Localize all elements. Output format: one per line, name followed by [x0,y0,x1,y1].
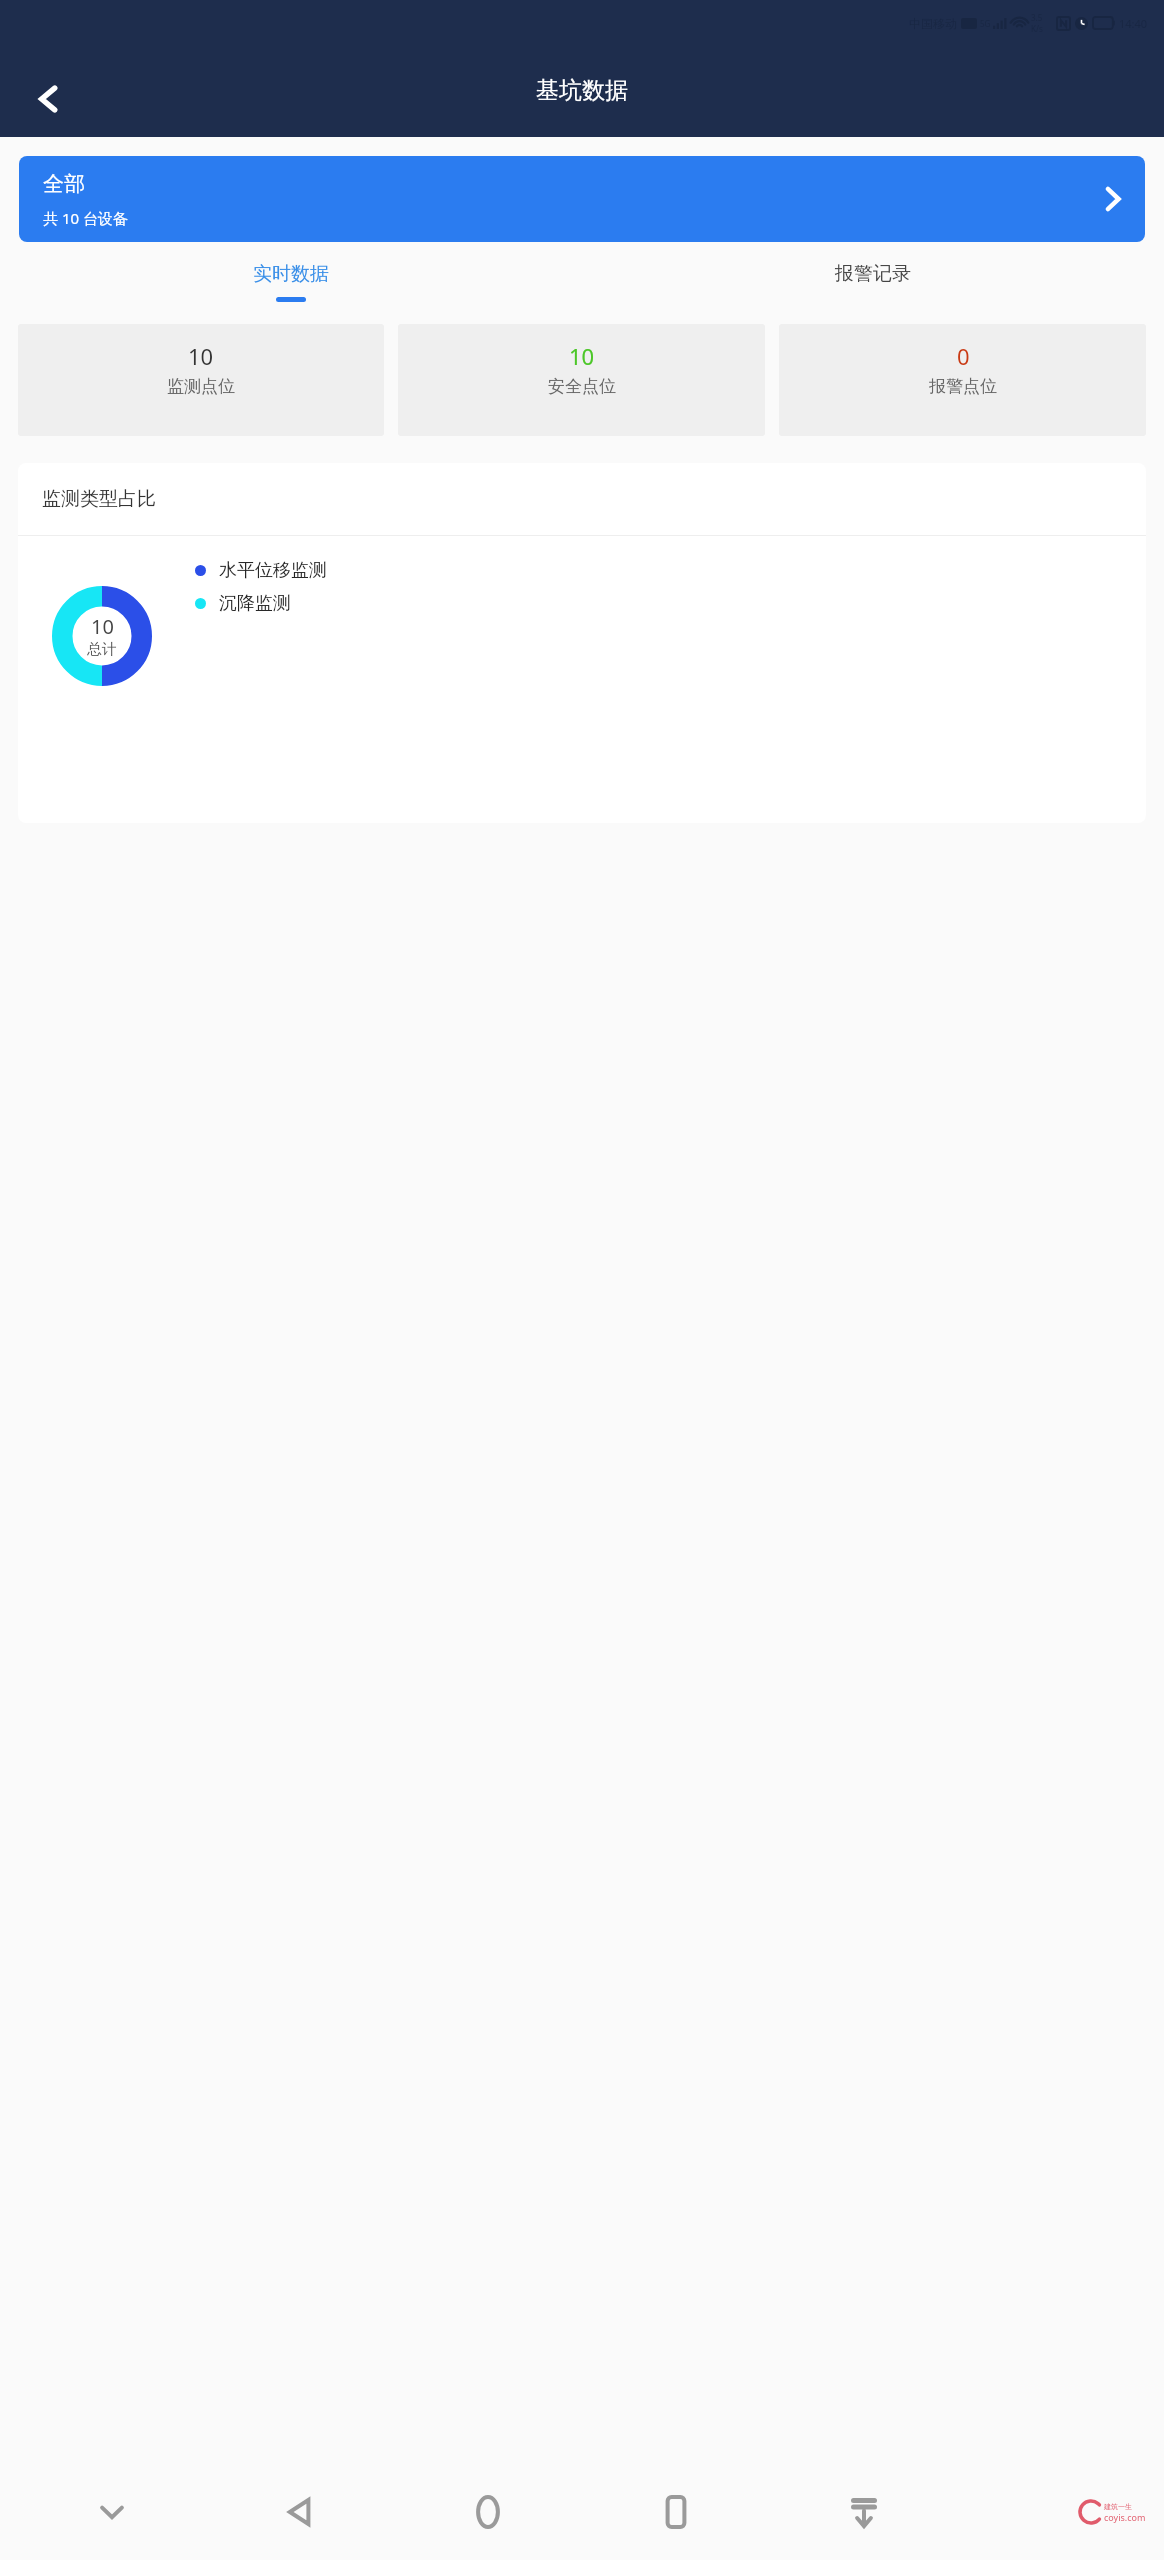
staticText: 报警点位 [929,376,997,397]
staticText: 水平位移监测 [219,559,327,582]
staticText: 10 [569,341,595,371]
button[interactable]: 10 [398,324,765,436]
staticText: 共 10 台设备 [43,208,128,228]
button[interactable]: 实时数据 [0,258,582,302]
staticText: 监测类型占比 [42,487,156,511]
staticText: 10 [188,341,214,371]
button[interactable]: Back [18,68,80,130]
staticText: 总计 [87,640,117,659]
staticText: 安全点位 [548,376,616,397]
staticText: 0 [957,341,970,371]
staticText: 10 [91,613,114,640]
staticText: 全部 [43,171,85,197]
button[interactable]: 0 [779,324,1146,436]
staticText: coyis.com [1104,2511,1146,2523]
staticText: 沉降监测 [219,592,291,615]
staticText: 基坑数据 [536,76,628,105]
button[interactable]: 10 [18,324,384,436]
button[interactable]: Recents [582,2464,770,2560]
button[interactable]: Back [206,2464,394,2560]
button[interactable]: 报警记录 [582,258,1164,297]
button[interactable]: Home [394,2464,582,2560]
button[interactable]: Download [770,2464,958,2560]
staticText: 报警记录 [835,262,911,286]
staticText: 监测点位 [167,376,235,397]
button[interactable]: 全部 [19,156,1145,242]
button[interactable]: Collapse [18,2464,206,2560]
staticText: 建筑一生 [1104,2502,1132,2511]
staticText: 实时数据 [253,262,329,286]
